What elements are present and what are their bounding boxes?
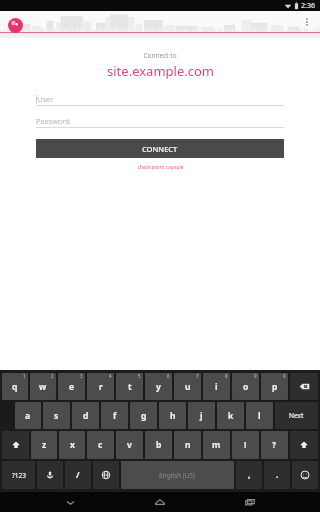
staticText: d xyxy=(83,410,89,422)
button[interactable]: 1 xyxy=(2,373,28,400)
staticText: a xyxy=(25,410,31,422)
button[interactable]: Backspace xyxy=(290,373,318,400)
staticText: 1 xyxy=(23,373,26,379)
staticText: 3 xyxy=(80,373,83,379)
button[interactable]: a xyxy=(15,402,41,429)
button[interactable]: check point capsule xyxy=(133,163,188,172)
staticText: 2:36 xyxy=(301,1,315,11)
button[interactable]: n xyxy=(174,431,201,459)
staticText: u xyxy=(185,381,191,393)
staticText: 2 xyxy=(51,373,54,379)
staticText: z xyxy=(42,439,47,451)
button[interactable]: c xyxy=(87,431,114,459)
button[interactable]: x xyxy=(59,431,85,459)
button[interactable]: 5 xyxy=(116,373,143,400)
staticText: c xyxy=(98,439,103,451)
staticText: s xyxy=(54,410,59,422)
staticText: ? xyxy=(272,439,277,451)
button[interactable]: m xyxy=(203,431,230,459)
button[interactable]: Change language xyxy=(93,461,119,489)
staticText: 9 xyxy=(254,373,257,379)
staticText: g xyxy=(141,410,147,422)
staticText: / xyxy=(76,469,80,481)
button[interactable]: 6 xyxy=(145,373,172,400)
button[interactable]: s xyxy=(43,402,70,429)
staticText: Password xyxy=(36,116,70,126)
staticText: v xyxy=(127,439,132,451)
staticText: h xyxy=(170,410,176,422)
button[interactable]: ! xyxy=(232,431,259,459)
staticText: 6 xyxy=(167,373,170,379)
button[interactable]: 9 xyxy=(232,373,259,400)
button[interactable]: Emoji xyxy=(292,461,318,489)
button[interactable]: f xyxy=(101,402,128,429)
button[interactable]: Hide keyboard xyxy=(50,492,90,512)
button[interactable]: 0 xyxy=(261,373,288,400)
button[interactable]: g xyxy=(130,402,157,429)
staticText: k xyxy=(228,410,234,422)
button[interactable]: ? xyxy=(261,431,288,459)
button[interactable]: l xyxy=(246,402,273,429)
staticText: x xyxy=(70,439,75,451)
staticText: 7 xyxy=(196,373,199,379)
staticText: w xyxy=(39,381,47,393)
staticText: Next xyxy=(289,411,304,420)
button[interactable]: b xyxy=(145,431,172,459)
staticText: l xyxy=(258,410,261,422)
staticText: , xyxy=(248,469,251,481)
staticText: check point capsule xyxy=(137,164,184,171)
button[interactable]: h xyxy=(159,402,186,429)
staticText: n xyxy=(185,439,191,451)
button[interactable]: j xyxy=(188,402,215,429)
button[interactable]: 8 xyxy=(203,373,230,400)
button[interactable]: App logo xyxy=(4,14,26,36)
staticText: j xyxy=(200,410,203,422)
button[interactable]: 3 xyxy=(58,373,85,400)
staticText: p xyxy=(272,381,278,393)
staticText: o xyxy=(243,381,249,393)
button[interactable]: User xyxy=(36,92,284,106)
button[interactable]: 4 xyxy=(87,373,114,400)
staticText: r xyxy=(99,381,103,393)
button[interactable]: 7 xyxy=(174,373,201,400)
button[interactable]: z xyxy=(31,431,57,459)
button[interactable]: , xyxy=(236,461,262,489)
staticText: site.example.com xyxy=(107,62,214,80)
button[interactable]: Recent apps xyxy=(230,492,270,512)
staticText: ?123 xyxy=(12,471,26,480)
staticText: t xyxy=(128,381,132,393)
button[interactable]: d xyxy=(72,402,99,429)
staticText: e xyxy=(69,381,75,393)
button[interactable]: Next xyxy=(275,402,318,429)
staticText: m xyxy=(212,439,221,451)
staticText: 8 xyxy=(225,373,228,379)
button[interactable]: v xyxy=(116,431,143,459)
button[interactable]: More options xyxy=(297,12,317,32)
button[interactable]: k xyxy=(217,402,244,429)
staticText: 0 xyxy=(283,373,286,379)
button[interactable]: 2 xyxy=(30,373,56,400)
button[interactable]: Home xyxy=(140,492,180,512)
staticText: f xyxy=(113,410,117,422)
staticText: . xyxy=(276,469,279,481)
staticText: 5 xyxy=(138,373,141,379)
staticText: q xyxy=(12,381,18,393)
button[interactable]: English (US) xyxy=(121,461,234,489)
button[interactable]: ?123 xyxy=(2,461,35,489)
staticText: CONNECT xyxy=(142,144,178,154)
button[interactable]: / xyxy=(65,461,91,489)
staticText: User xyxy=(37,94,54,104)
staticText: Connect to xyxy=(143,51,177,60)
staticText: ! xyxy=(244,439,247,451)
staticText: English (US) xyxy=(159,471,196,480)
button[interactable]: Password xyxy=(36,114,284,128)
button[interactable]: CONNECT xyxy=(36,139,284,158)
staticText: y xyxy=(156,381,161,393)
staticText: b xyxy=(156,439,162,451)
button[interactable]: . xyxy=(264,461,290,489)
button[interactable]: Voice input xyxy=(37,461,63,489)
staticText: 4 xyxy=(109,373,112,379)
staticText: i xyxy=(215,381,218,393)
button[interactable]: Shift xyxy=(290,431,318,459)
button[interactable]: Shift xyxy=(2,431,29,459)
